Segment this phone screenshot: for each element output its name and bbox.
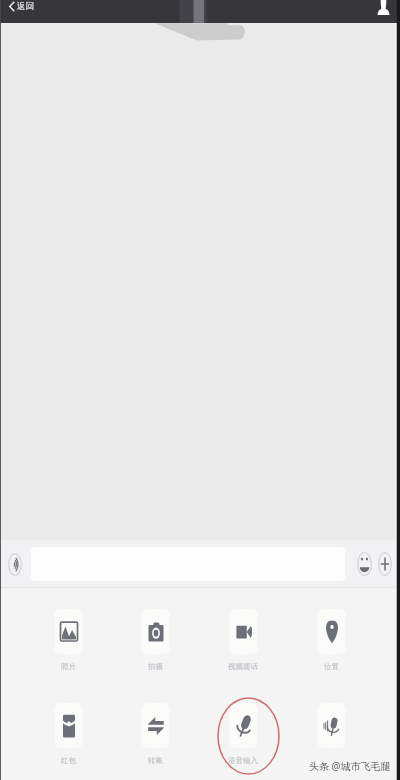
button[interactable]: 红包 bbox=[25, 703, 112, 765]
staticText: 转账 bbox=[148, 756, 163, 765]
button[interactable]: Emoji bbox=[354, 550, 374, 578]
button[interactable]: 返回 bbox=[0, 1, 40, 12]
button[interactable]: Contact info bbox=[378, 0, 389, 15]
button[interactable]: 位置 bbox=[287, 609, 375, 671]
staticText: 视频通话 bbox=[228, 662, 258, 671]
staticText: 照片 bbox=[61, 662, 76, 671]
staticText: 拍摄 bbox=[148, 662, 163, 671]
button[interactable]: Voice message bbox=[4, 549, 25, 579]
staticText: 头条 @城市飞毛腿 bbox=[309, 759, 391, 773]
button[interactable]: 转账 bbox=[112, 703, 199, 765]
button[interactable]: 语音输入 bbox=[199, 703, 287, 765]
button[interactable]: 视频通话 bbox=[199, 609, 287, 671]
staticText: 语音输入 bbox=[228, 756, 258, 765]
staticText: 返回 bbox=[17, 1, 34, 12]
staticText: 位置 bbox=[324, 662, 339, 671]
button[interactable]: More options bbox=[375, 550, 395, 578]
button[interactable]: 拍摄 bbox=[112, 609, 199, 671]
staticText: 红包 bbox=[61, 756, 76, 765]
button[interactable]: 照片 bbox=[25, 609, 112, 671]
button[interactable] bbox=[287, 703, 375, 766]
